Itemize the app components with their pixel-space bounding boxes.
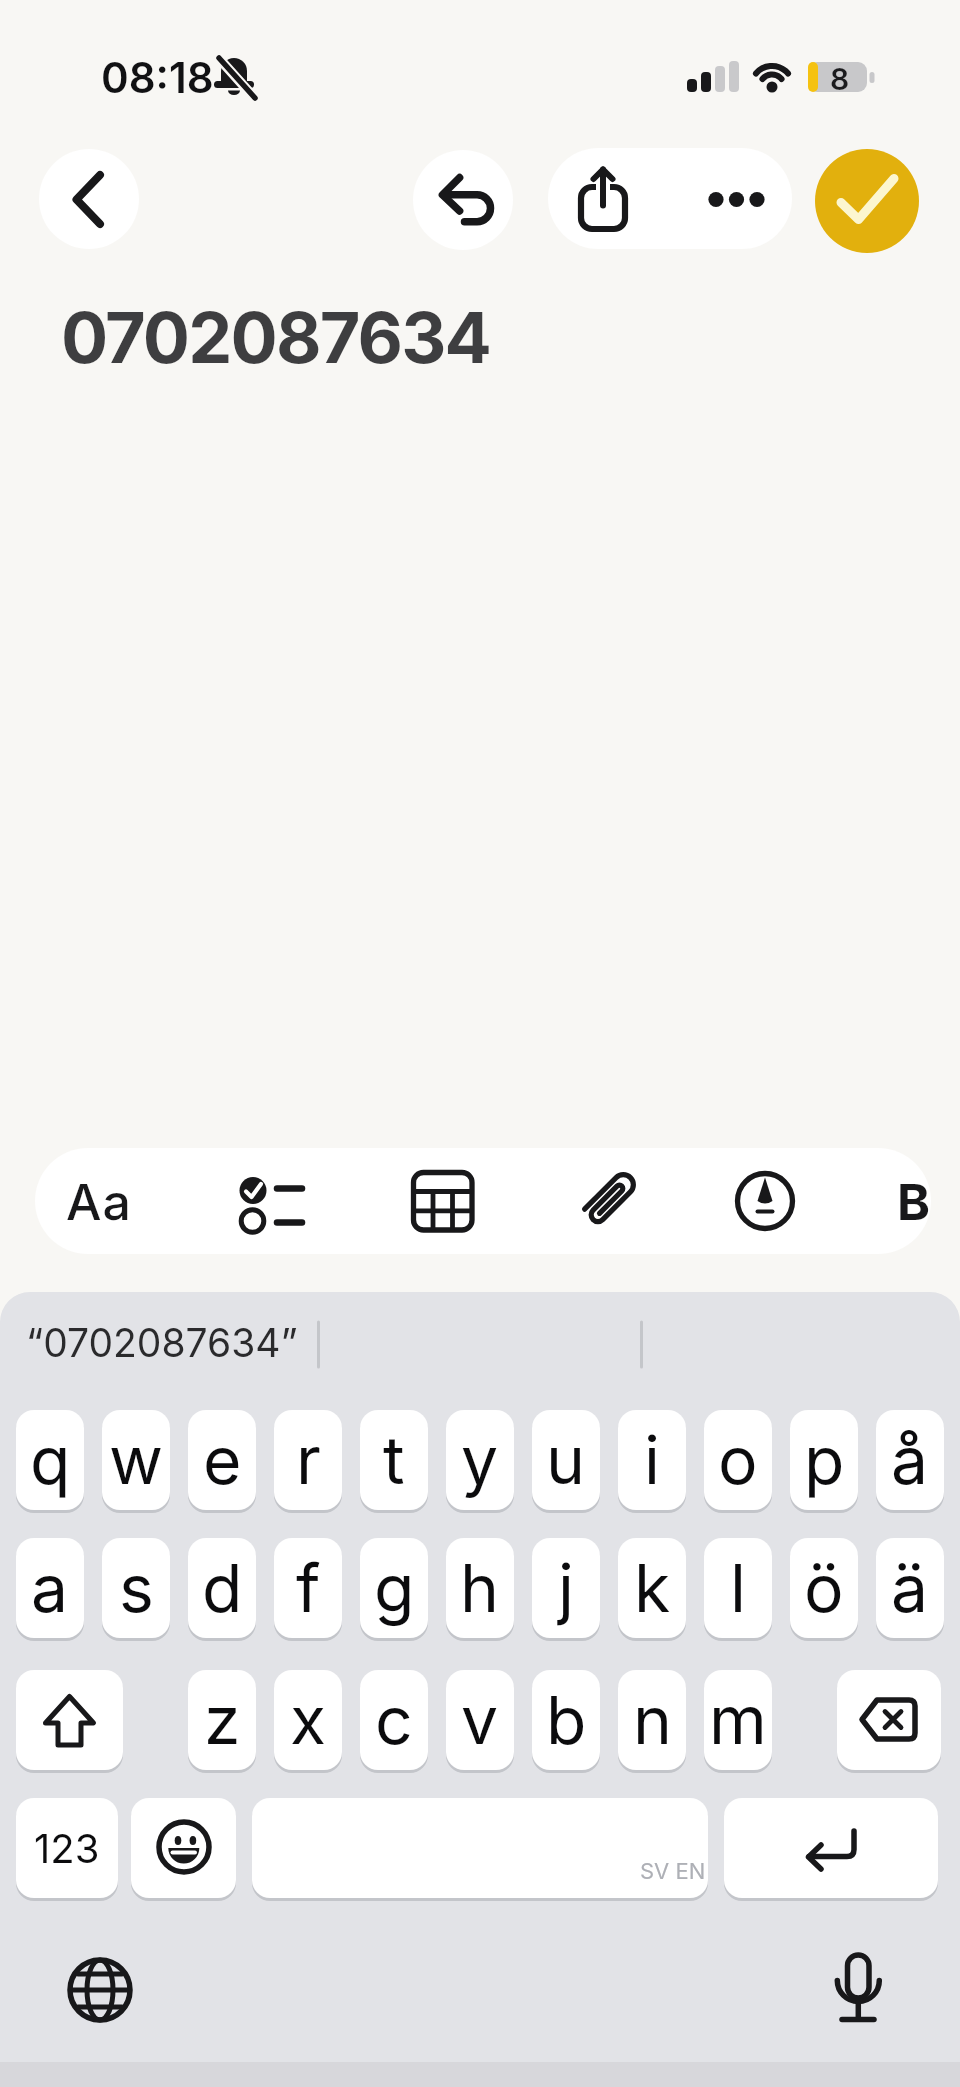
- staticText: f: [296, 1548, 321, 1628]
- staticText: 123: [34, 1824, 100, 1872]
- staticText: k: [634, 1548, 671, 1628]
- staticText: v: [461, 1680, 499, 1760]
- button[interactable]: [670, 148, 792, 249]
- button[interactable]: [395, 1148, 525, 1254]
- button[interactable]: n: [618, 1670, 686, 1770]
- staticText: b: [546, 1680, 587, 1760]
- button[interactable]: k: [618, 1538, 686, 1638]
- button[interactable]: u: [532, 1410, 600, 1510]
- button[interactable]: [725, 1148, 855, 1254]
- staticText: u: [546, 1420, 586, 1500]
- staticText: w: [109, 1420, 164, 1500]
- button[interactable]: h: [446, 1538, 514, 1638]
- button[interactable]: q: [16, 1410, 84, 1510]
- button[interactable]: 123: [16, 1798, 118, 1898]
- button[interactable]: e: [188, 1410, 256, 1510]
- button[interactable]: w: [102, 1410, 170, 1510]
- staticText: m: [709, 1680, 767, 1760]
- button[interactable]: [55, 1148, 185, 1254]
- staticText: a: [31, 1548, 69, 1628]
- staticText: r: [296, 1420, 321, 1500]
- button[interactable]: [225, 1148, 355, 1254]
- button[interactable]: a: [16, 1538, 84, 1638]
- staticText: SV EN: [640, 1858, 706, 1885]
- button[interactable]: [55, 1943, 145, 2033]
- staticText: ö: [804, 1548, 844, 1628]
- staticText: y: [461, 1420, 499, 1500]
- button[interactable]: b: [532, 1670, 600, 1770]
- button[interactable]: v: [446, 1670, 514, 1770]
- button[interactable]: ö: [790, 1538, 858, 1638]
- button[interactable]: c: [360, 1670, 428, 1770]
- button[interactable]: y: [446, 1410, 514, 1510]
- staticText: d: [202, 1548, 243, 1628]
- staticText: “0702087634”: [26, 1319, 298, 1366]
- staticText: x: [290, 1680, 327, 1760]
- button[interactable]: o: [704, 1410, 772, 1510]
- button[interactable]: [252, 1798, 708, 1898]
- button[interactable]: [837, 1670, 941, 1770]
- button[interactable]: [724, 1798, 938, 1898]
- button[interactable]: [16, 1670, 123, 1770]
- staticText: t: [383, 1420, 405, 1500]
- button[interactable]: s: [102, 1538, 170, 1638]
- staticText: h: [460, 1548, 500, 1628]
- staticText: o: [718, 1420, 758, 1500]
- button[interactable]: m: [704, 1670, 772, 1770]
- staticText: g: [374, 1548, 415, 1628]
- staticText: ä: [891, 1548, 929, 1628]
- staticText: e: [203, 1420, 242, 1500]
- staticText: n: [633, 1680, 672, 1760]
- button[interactable]: j: [532, 1538, 600, 1638]
- staticText: z: [204, 1680, 241, 1760]
- button[interactable]: d: [188, 1538, 256, 1638]
- staticText: Aa: [66, 1172, 132, 1232]
- staticText: l: [730, 1548, 746, 1628]
- staticText: å: [891, 1420, 929, 1500]
- button[interactable]: l: [704, 1538, 772, 1638]
- staticText: p: [804, 1420, 845, 1500]
- button[interactable]: [39, 149, 139, 249]
- button[interactable]: g: [360, 1538, 428, 1638]
- staticText: c: [375, 1680, 413, 1760]
- button[interactable]: [131, 1798, 236, 1898]
- button[interactable]: [815, 149, 919, 253]
- staticText: 8: [830, 61, 850, 97]
- button[interactable]: [565, 1148, 695, 1254]
- button[interactable]: t: [360, 1410, 428, 1510]
- button[interactable]: [413, 150, 513, 250]
- button[interactable]: i: [618, 1410, 686, 1510]
- staticText: B: [897, 1172, 931, 1232]
- button[interactable]: [815, 1943, 905, 2033]
- button[interactable]: f: [274, 1538, 342, 1638]
- staticText: s: [119, 1548, 154, 1628]
- staticText: i: [644, 1420, 660, 1500]
- button[interactable]: z: [188, 1670, 256, 1770]
- staticText: j: [558, 1548, 574, 1628]
- button[interactable]: r: [274, 1410, 342, 1510]
- button[interactable]: ä: [876, 1538, 944, 1638]
- staticText: 0702087634: [61, 295, 491, 380]
- button[interactable]: [548, 148, 670, 249]
- button[interactable]: å: [876, 1410, 944, 1510]
- staticText: 08:18: [101, 52, 214, 103]
- button[interactable]: x: [274, 1670, 342, 1770]
- staticText: q: [30, 1420, 71, 1500]
- button[interactable]: p: [790, 1410, 858, 1510]
